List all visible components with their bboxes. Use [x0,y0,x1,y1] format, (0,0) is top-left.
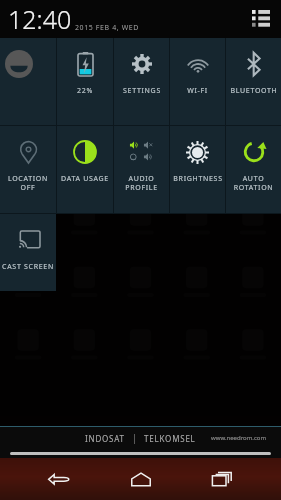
button[interactable]: DATA USAGE [57,126,113,213]
button[interactable]: Owner profile [0,38,56,125]
button[interactable]: WI-FI [170,38,225,125]
staticText: INDOSAT [85,433,125,444]
button[interactable]: 22% [57,38,113,125]
staticText: AUTO ROTATION [228,174,279,192]
button[interactable]: BLUETOOTH [226,38,281,125]
button[interactable]: Home [119,458,163,500]
staticText: TELKOMSEL [144,433,196,444]
staticText: 12:40 [8,2,72,36]
button[interactable]: SETTINGS [114,38,169,125]
staticText: SETTINGS [123,86,161,96]
staticText: www.needrom.com [211,434,267,442]
staticText: 2015 FEB 4, WED [75,23,139,33]
button[interactable] [10,452,271,455]
button[interactable]: CAST SCREEN [0,214,56,291]
staticText: BLUETOOTH [230,86,278,96]
button[interactable]: Notifications list [249,7,273,31]
staticText: AUDIO PROFILE [116,174,167,192]
staticText: DATA USAGE [61,174,109,184]
staticText: LOCATION OFF [2,174,54,192]
staticText: WI-FI [187,86,208,96]
staticText: BRIGHTNESS [173,174,223,184]
button[interactable]: AUDIO PROFILE [114,126,169,213]
button[interactable]: AUTO ROTATION [226,126,281,213]
button[interactable]: BRIGHTNESS [170,126,225,213]
button[interactable]: Recent apps [200,458,244,500]
button[interactable]: LOCATION OFF [0,126,56,213]
staticText: 22% [77,86,93,96]
staticText: CAST SCREEN [2,262,54,272]
button[interactable]: Back [37,458,81,500]
